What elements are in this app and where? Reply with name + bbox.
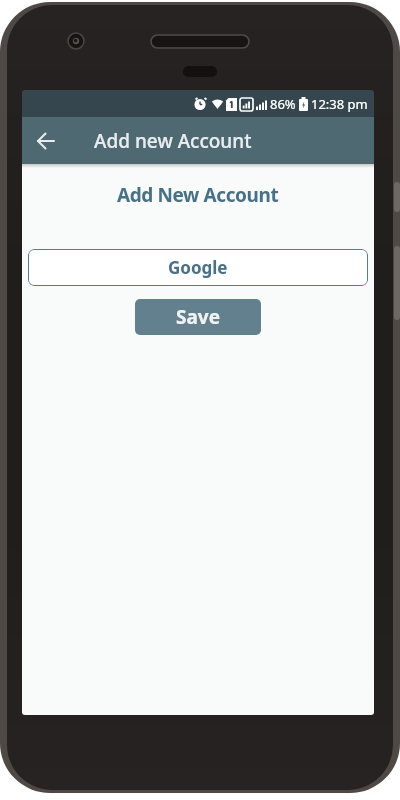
button[interactable] [22, 117, 69, 164]
button[interactable]: Google [28, 249, 368, 286]
staticText: 86% [270, 95, 296, 113]
button[interactable]: Save [135, 299, 261, 335]
staticText: Save [176, 304, 221, 330]
staticText: Add new Account [94, 128, 252, 154]
staticText: 12:38 pm [311, 95, 368, 113]
staticText: Add New Account [117, 182, 279, 208]
staticText: Google [168, 256, 228, 279]
